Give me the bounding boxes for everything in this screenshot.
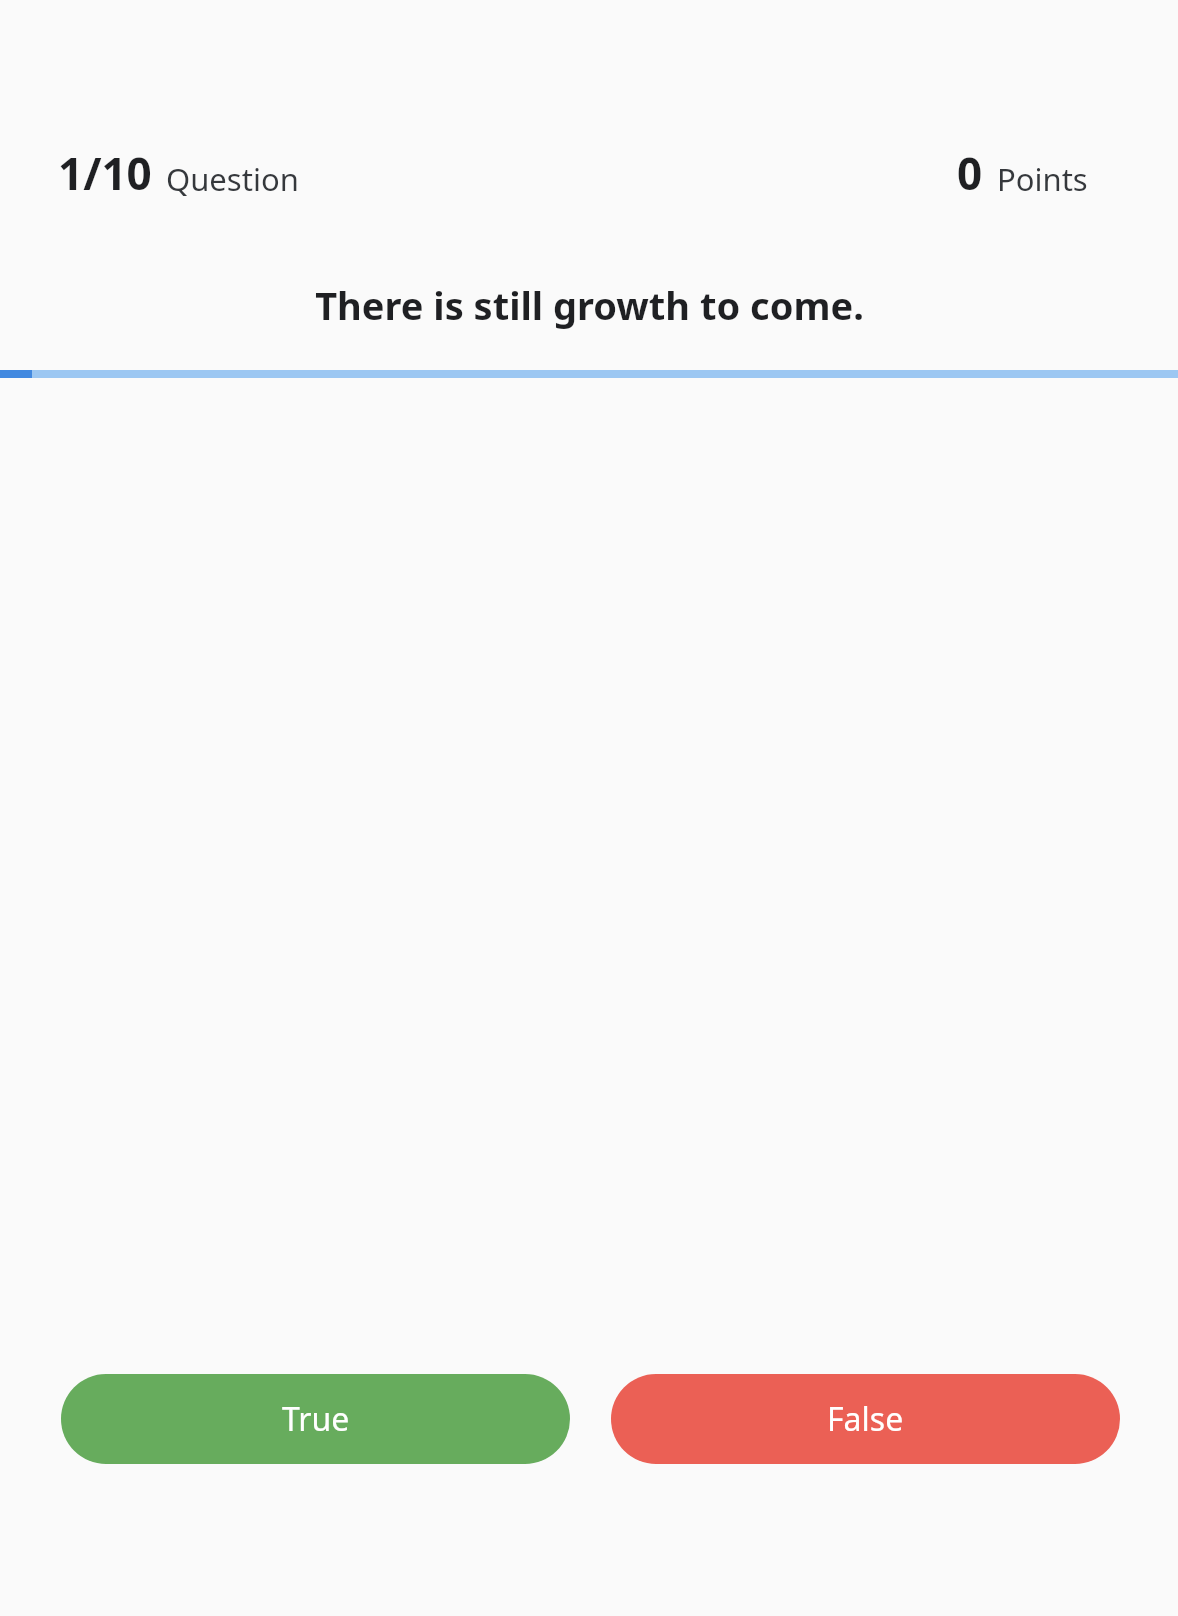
staticText: Question [166, 158, 299, 200]
button[interactable]: True [61, 1374, 570, 1464]
staticText: There is still growth to come. [315, 279, 864, 331]
staticText: True [282, 1397, 350, 1441]
button[interactable]: False [611, 1374, 1120, 1464]
staticText: Points [997, 158, 1088, 200]
staticText: 0 [957, 143, 983, 203]
staticText: False [827, 1397, 904, 1441]
staticText: 1/10 [58, 143, 152, 203]
